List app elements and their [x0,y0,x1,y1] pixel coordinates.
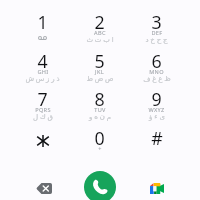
staticText: ج ح خ د [145,35,168,45]
staticText: WXYZ [148,106,165,114]
staticText: PQRS [35,106,51,114]
button[interactable]: Backspace [28,177,60,199]
button[interactable]: 6 [128,49,185,88]
staticText: ا ب ت ث [86,35,114,45]
button[interactable]: 8 [71,87,128,126]
button[interactable]: 5 [71,49,128,88]
staticText: ق ك ل [33,112,53,122]
staticText: 5 [94,49,105,73]
button[interactable]: 9 [128,87,185,126]
button[interactable]: Call [84,171,116,200]
button[interactable]: 2 [71,10,128,49]
staticText: م ن ه و [89,112,111,122]
staticText: ی ء ؤ [149,112,165,122]
button[interactable]: Star [14,126,71,165]
staticText: ص ض ط [86,74,114,84]
other: Star [37,135,49,147]
staticText: JKL [95,68,104,76]
staticText: 0 [94,126,105,150]
staticText: MNO [149,68,164,76]
staticText: ظ ع غ ف [143,74,171,84]
button[interactable]: 7 [14,87,71,126]
staticText: 1 [37,10,48,34]
staticText: 7 [37,87,48,111]
staticText: 8 [94,87,105,111]
button[interactable]: 1 [14,10,71,49]
staticText: ذ ر ز س ش [25,74,60,84]
staticText: ABC [94,29,106,37]
staticText: DEF [151,29,163,37]
staticText: 6 [151,49,162,73]
button[interactable]: 0 [71,126,128,165]
staticText: TUV [94,106,106,114]
staticText: 4 [37,49,48,73]
staticText: 3 [151,10,162,34]
staticText: + [98,145,102,153]
button[interactable]: 3 [128,10,185,49]
staticText: # [151,126,163,150]
button[interactable]: 4 [14,49,71,88]
staticText: 2 [94,10,105,34]
staticText: GHI [37,68,49,76]
staticText: 9 [151,87,162,111]
button[interactable]: # [128,126,185,165]
button[interactable]: Video call [141,177,173,199]
